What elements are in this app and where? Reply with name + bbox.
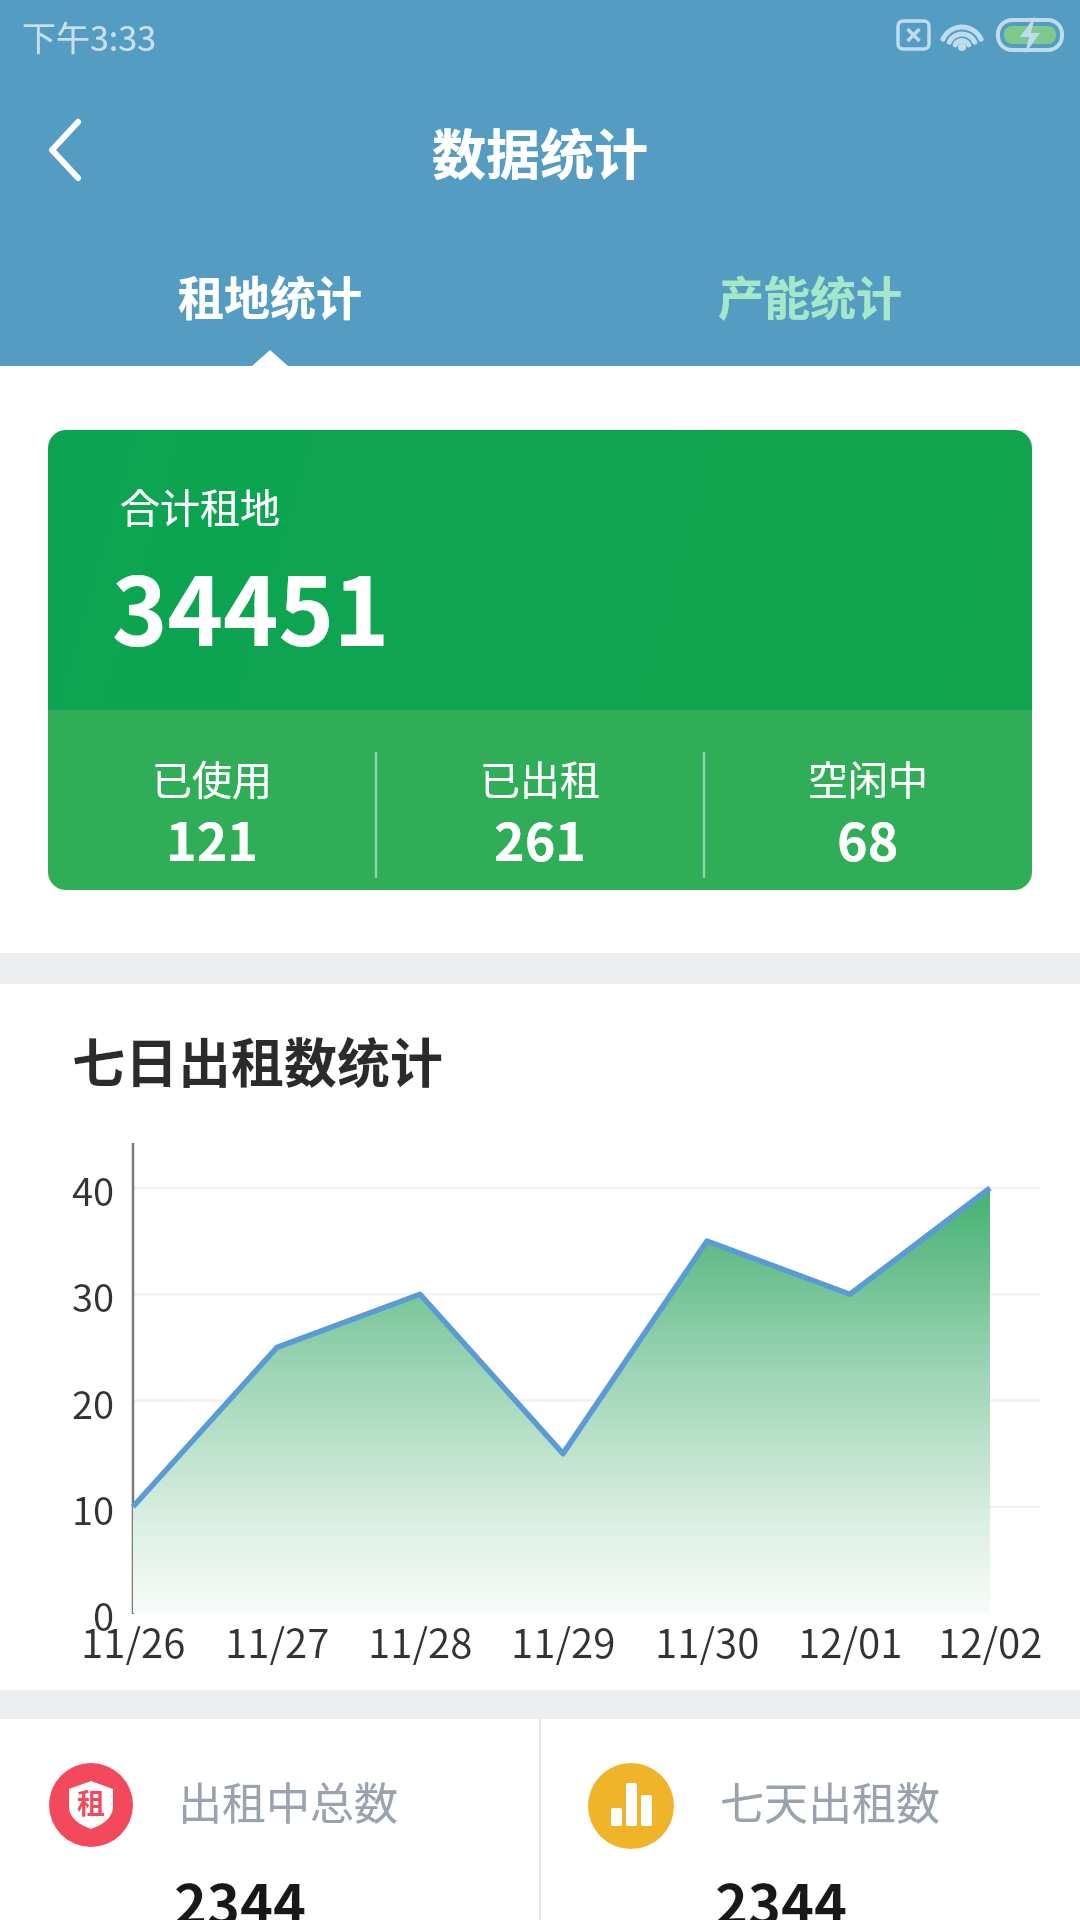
staticText: 40	[72, 1162, 115, 1217]
staticText: 已出租	[480, 749, 600, 807]
button[interactable]: 七天出租数	[541, 1719, 1080, 1920]
button[interactable]	[30, 110, 110, 190]
staticText: 11/27	[225, 1612, 330, 1670]
staticText: 10	[72, 1481, 115, 1536]
staticText: 11/30	[655, 1612, 760, 1670]
staticText: 11/26	[81, 1612, 186, 1670]
staticText: 2344	[174, 1860, 307, 1920]
staticText: 七日出租数统计	[72, 1022, 443, 1099]
staticText: 下午3:33	[22, 12, 157, 61]
staticText: 121	[166, 801, 259, 876]
staticText: 数据统计	[432, 112, 648, 190]
staticText: 30	[72, 1268, 115, 1323]
staticText: 12/02	[938, 1612, 1043, 1670]
button[interactable]: 产能统计	[540, 262, 1080, 342]
button[interactable]: 租	[0, 1719, 539, 1920]
staticText: 12/01	[798, 1612, 903, 1670]
staticText: 产能统计	[718, 262, 902, 329]
staticText: 空闲中	[808, 749, 928, 807]
staticText: 出租中总数	[178, 1769, 398, 1833]
staticText: 261	[494, 801, 587, 876]
staticText: 七天出租数	[720, 1769, 940, 1833]
staticText: 已使用	[152, 749, 272, 807]
staticText: 0	[93, 1587, 115, 1642]
staticText: 租地统计	[178, 262, 362, 329]
staticText: 合计租地	[120, 477, 280, 535]
staticText: 11/29	[511, 1612, 616, 1670]
staticText: 34451	[112, 537, 390, 673]
staticText: 11/28	[368, 1612, 473, 1670]
staticText: 租	[77, 1782, 106, 1823]
staticText: 68	[837, 801, 899, 876]
button[interactable]: 租地统计	[0, 262, 540, 342]
button[interactable]: 合计租地	[48, 430, 1032, 890]
staticText: 20	[72, 1375, 115, 1430]
staticText: 2344	[715, 1860, 848, 1920]
